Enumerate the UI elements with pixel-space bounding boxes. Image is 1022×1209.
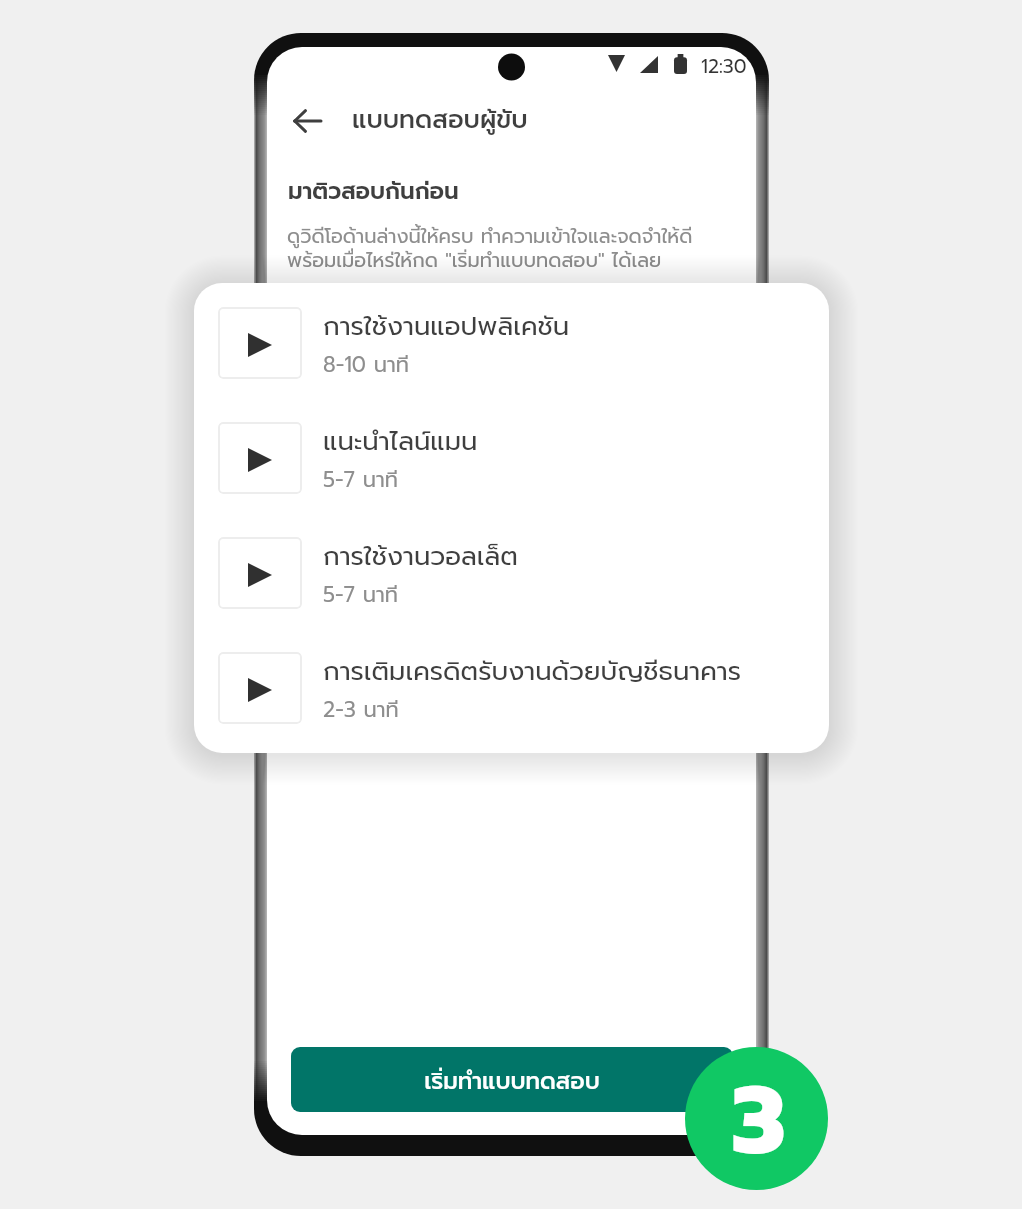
staticText: การใช้งานวอลเล็ต	[323, 537, 518, 576]
staticText: 12:30	[701, 52, 747, 81]
button[interactable]: การเติมเครดิตรับงานด้วยบัญชีธนาคาร	[218, 652, 829, 724]
staticText: 2-3 นาที	[323, 694, 399, 724]
staticText: ดูวิดีโอด้านล่างนี้ให้ครบ ทำความเข้าใจแล…	[287, 222, 693, 251]
staticText: พร้อมเมื่อไหร่ให้กด "เริ่มทำแบบทดสอบ" ได…	[287, 246, 662, 275]
button[interactable]: เริ่มทำแบบทดสอบ	[291, 1047, 733, 1112]
button[interactable]: 3	[685, 1047, 828, 1190]
staticText: 8-10 นาที	[323, 349, 409, 379]
staticText: การใช้งานแอปพลิเคชัน	[323, 307, 570, 346]
staticText: 5-7 นาที	[323, 464, 398, 494]
staticText: แนะนำไลน์แมน	[323, 422, 478, 461]
button[interactable]: Back	[286, 100, 328, 142]
staticText: มาติวสอบกันก่อน	[288, 174, 459, 209]
staticText: การเติมเครดิตรับงานด้วยบัญชีธนาคาร	[323, 652, 742, 691]
staticText: 3	[731, 1047, 787, 1183]
button[interactable]: การใช้งานแอปพลิเคชัน	[218, 307, 829, 379]
staticText: เริ่มทำแบบทดสอบ	[424, 1064, 600, 1099]
staticText: 5-7 นาที	[323, 579, 398, 609]
staticText: แบบทดสอบผู้ขับ	[352, 101, 528, 139]
button[interactable]: การใช้งานวอลเล็ต	[218, 537, 829, 609]
button[interactable]: แนะนำไลน์แมน	[218, 422, 829, 494]
